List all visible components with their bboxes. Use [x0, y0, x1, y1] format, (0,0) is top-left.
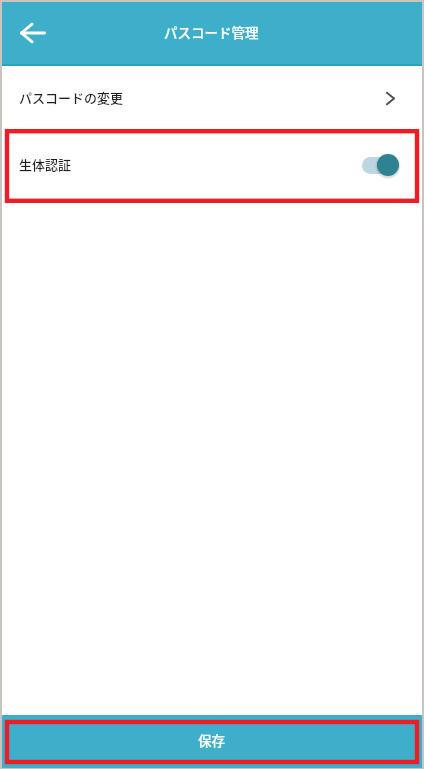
button[interactable]: パスコードの変更 — [2, 66, 422, 129]
staticText: パスコードの変更 — [19, 88, 124, 107]
staticText: 保存 — [198, 730, 225, 750]
staticText: パスコード管理 — [164, 22, 259, 42]
staticText: 生体認証 — [19, 155, 72, 174]
button[interactable]: 生体認証 — [2, 129, 422, 203]
button[interactable]: Back — [10, 10, 56, 56]
button[interactable]: 保存 — [2, 715, 422, 768]
